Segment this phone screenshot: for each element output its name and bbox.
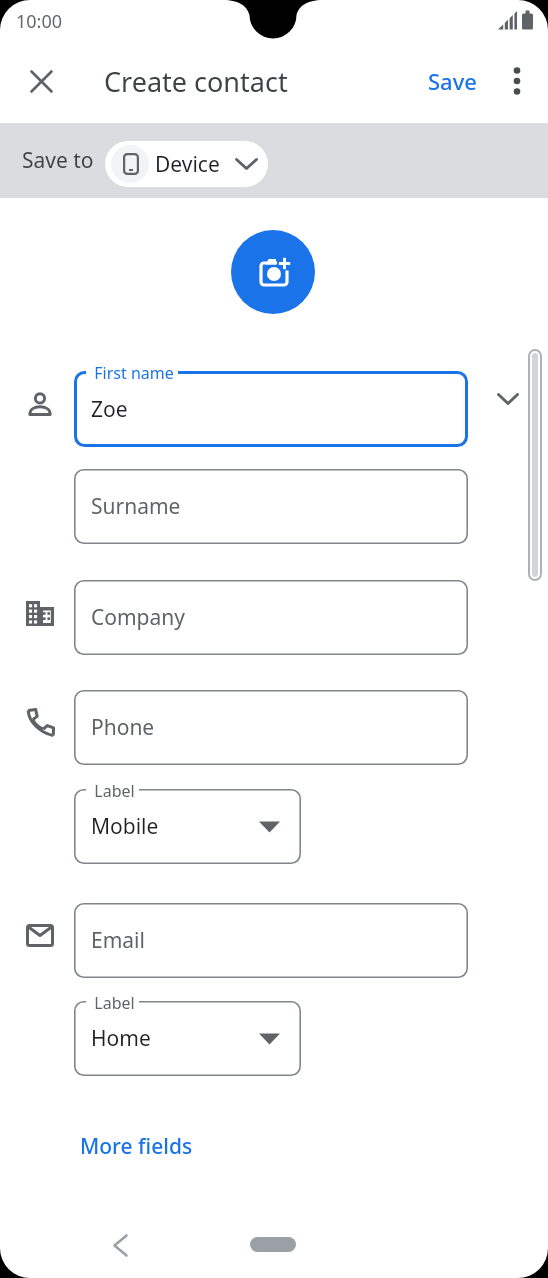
button[interactable]: First name xyxy=(74,371,468,447)
staticText: Label xyxy=(86,780,139,802)
staticText: Email xyxy=(91,926,145,955)
staticText: Zoe xyxy=(91,395,128,424)
staticText: Create contact xyxy=(104,63,288,100)
staticText: Save xyxy=(428,66,477,96)
button[interactable]: Label xyxy=(74,789,301,864)
button[interactable] xyxy=(496,56,538,106)
button[interactable] xyxy=(16,56,66,106)
staticText: Home xyxy=(91,1024,151,1053)
staticText: Save to xyxy=(22,146,94,175)
button[interactable]: Surname xyxy=(74,469,468,544)
staticText: Phone xyxy=(91,713,155,742)
button[interactable]: Label xyxy=(74,1001,301,1076)
staticText: Label xyxy=(86,992,139,1014)
button[interactable] xyxy=(96,1228,144,1262)
staticText: Surname xyxy=(91,492,181,521)
button[interactable]: Save xyxy=(416,56,488,106)
staticText: First name xyxy=(86,362,178,384)
button[interactable]: Email xyxy=(74,903,468,978)
staticText: More fields xyxy=(80,1132,193,1161)
button[interactable] xyxy=(231,230,315,314)
staticText: 10:00 xyxy=(16,9,63,34)
button[interactable]: Device xyxy=(105,141,268,187)
button[interactable]: Phone xyxy=(74,690,468,765)
button[interactable]: More fields xyxy=(80,1122,220,1170)
button[interactable] xyxy=(250,1237,296,1252)
staticText: Mobile xyxy=(91,812,159,841)
staticText: Device xyxy=(155,150,220,179)
staticText: Company xyxy=(91,603,185,632)
button[interactable]: Company xyxy=(74,580,468,655)
